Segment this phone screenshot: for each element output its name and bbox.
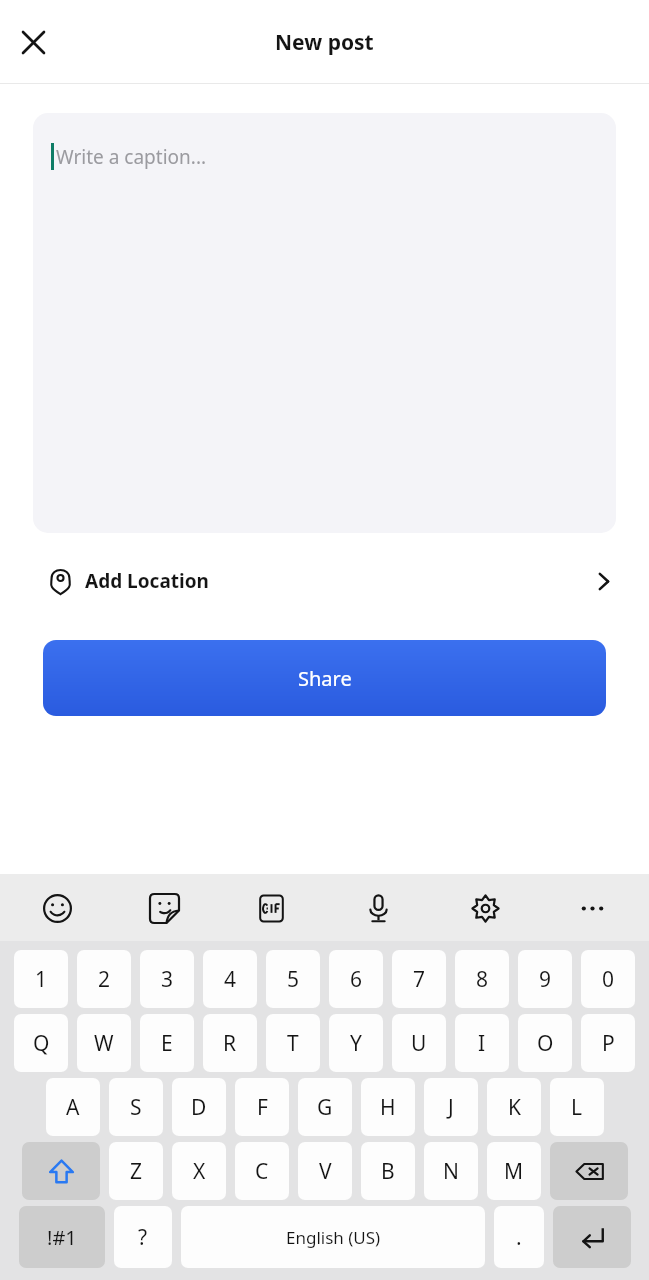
staticText: R	[223, 1029, 237, 1058]
button[interactable]: Y	[329, 1014, 383, 1072]
staticText: L	[571, 1093, 583, 1122]
button[interactable]: Voice input	[354, 884, 402, 932]
staticText: O	[537, 1029, 554, 1058]
button[interactable]: Share	[43, 640, 606, 716]
staticText: T	[287, 1029, 299, 1058]
staticText: 5	[287, 965, 300, 994]
staticText: J	[448, 1093, 454, 1122]
button[interactable]: Q	[14, 1014, 68, 1072]
button[interactable]: D	[172, 1078, 226, 1136]
button[interactable]: 9	[518, 950, 572, 1008]
button[interactable]: P	[581, 1014, 635, 1072]
button[interactable]: !#1	[19, 1206, 105, 1268]
button[interactable]: H	[361, 1078, 415, 1136]
staticText: 7	[413, 965, 426, 994]
staticText: Write a caption...	[56, 144, 207, 170]
staticText: Y	[350, 1029, 362, 1058]
button[interactable]: J	[424, 1078, 478, 1136]
button[interactable]: More options	[568, 884, 616, 932]
staticText: 6	[350, 965, 363, 994]
staticText: 0	[602, 965, 615, 994]
button[interactable]: .	[494, 1206, 544, 1268]
button[interactable]: 2	[77, 950, 131, 1008]
button[interactable]: X	[172, 1142, 226, 1200]
button[interactable]: 6	[329, 950, 383, 1008]
staticText: F	[257, 1093, 268, 1122]
button[interactable]: G	[298, 1078, 352, 1136]
button[interactable]: F	[235, 1078, 289, 1136]
staticText: N	[443, 1157, 459, 1186]
staticText: I	[478, 1029, 486, 1058]
button[interactable]: W	[77, 1014, 131, 1072]
staticText: H	[380, 1093, 396, 1122]
staticText: New post	[275, 28, 374, 57]
staticText: P	[602, 1029, 615, 1058]
button[interactable]: Emoji	[33, 884, 81, 932]
staticText: 8	[476, 965, 489, 994]
staticText: K	[508, 1093, 521, 1122]
button[interactable]: S	[109, 1078, 163, 1136]
button[interactable]: 7	[392, 950, 446, 1008]
button[interactable]: 0	[581, 950, 635, 1008]
button[interactable]: B	[361, 1142, 415, 1200]
button[interactable]: V	[298, 1142, 352, 1200]
staticText: U	[411, 1029, 427, 1058]
button[interactable]: A	[46, 1078, 100, 1136]
button[interactable]: Settings	[461, 884, 509, 932]
staticText: 2	[98, 965, 111, 994]
staticText: English (US)	[286, 1226, 381, 1249]
button[interactable]: C	[235, 1142, 289, 1200]
staticText: Q	[33, 1029, 50, 1058]
button[interactable]: 5	[266, 950, 320, 1008]
staticText: 9	[539, 965, 552, 994]
button[interactable]: Z	[109, 1142, 163, 1200]
button[interactable]: K	[487, 1078, 541, 1136]
staticText: W	[94, 1029, 114, 1058]
button[interactable]: Add Location	[0, 549, 649, 613]
button[interactable]: Shift	[22, 1142, 100, 1200]
button[interactable]: Backspace	[550, 1142, 628, 1200]
staticText: !#1	[47, 1224, 77, 1251]
staticText: M	[504, 1157, 524, 1186]
staticText: E	[161, 1029, 173, 1058]
button[interactable]: 3	[140, 950, 194, 1008]
button[interactable]: Write a caption...	[33, 113, 616, 533]
staticText: 3	[161, 965, 174, 994]
staticText: A	[66, 1093, 80, 1122]
staticText: B	[381, 1157, 395, 1186]
button[interactable]: N	[424, 1142, 478, 1200]
button[interactable]: T	[266, 1014, 320, 1072]
button[interactable]: ?	[114, 1206, 172, 1268]
staticText: V	[319, 1157, 332, 1186]
staticText: C	[255, 1157, 269, 1186]
staticText: Share	[298, 665, 352, 692]
button[interactable]: English (US)	[181, 1206, 485, 1268]
button[interactable]: 4	[203, 950, 257, 1008]
button[interactable]: 8	[455, 950, 509, 1008]
button[interactable]: R	[203, 1014, 257, 1072]
staticText: ?	[138, 1223, 148, 1252]
button[interactable]: Enter	[553, 1206, 631, 1268]
staticText: X	[193, 1157, 206, 1186]
staticText: 4	[224, 965, 237, 994]
staticText: Z	[130, 1157, 143, 1186]
button[interactable]: L	[550, 1078, 604, 1136]
staticText: .	[516, 1223, 522, 1252]
button[interactable]: M	[487, 1142, 541, 1200]
staticText: G	[317, 1093, 333, 1122]
staticText: D	[191, 1093, 207, 1122]
button[interactable]: O	[518, 1014, 572, 1072]
button[interactable]: I	[455, 1014, 509, 1072]
button[interactable]: U	[392, 1014, 446, 1072]
staticText: 1	[35, 965, 48, 994]
staticText: S	[130, 1093, 142, 1122]
button[interactable]: Stickers	[140, 884, 188, 932]
button[interactable]: GIF	[247, 884, 295, 932]
button[interactable]: E	[140, 1014, 194, 1072]
button[interactable]: 1	[14, 950, 68, 1008]
button[interactable]: Close	[9, 18, 57, 66]
staticText: Add Location	[85, 568, 209, 594]
